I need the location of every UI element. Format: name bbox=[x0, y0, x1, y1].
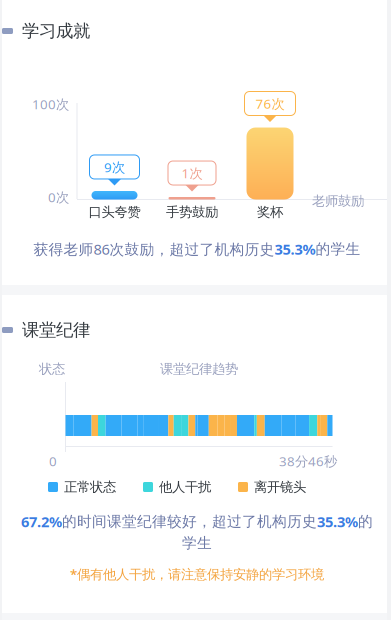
staticText: 奖杯 bbox=[257, 204, 283, 220]
staticText: 他人干扰 bbox=[159, 479, 211, 495]
staticText: 的时间课堂纪律较好，超过了机构历史 bbox=[62, 512, 317, 530]
staticText: 9次 bbox=[104, 158, 125, 176]
staticText: 67.2% bbox=[21, 512, 62, 531]
staticText: 手势鼓励 bbox=[166, 204, 218, 220]
staticText: 的 bbox=[358, 512, 373, 530]
staticText: 正常状态 bbox=[64, 479, 116, 495]
staticText: 状态 bbox=[39, 361, 65, 377]
staticText: 1次 bbox=[181, 164, 202, 182]
staticText: 76次 bbox=[255, 95, 284, 112]
staticText: 100次 bbox=[32, 95, 69, 113]
staticText: 老师鼓励 bbox=[312, 193, 364, 209]
staticText: 课堂纪律 bbox=[22, 319, 90, 341]
staticText: 离开镜头 bbox=[254, 479, 306, 495]
staticText: 的学生 bbox=[315, 240, 360, 258]
staticText: 0次 bbox=[48, 188, 69, 206]
staticText: 38分46秒 bbox=[279, 452, 337, 470]
staticText: 学生 bbox=[182, 534, 212, 552]
staticText: 学习成就 bbox=[22, 20, 90, 42]
staticText: 35.3% bbox=[274, 239, 315, 259]
staticText: 课堂纪律趋势 bbox=[160, 361, 238, 377]
staticText: 口头夸赞 bbox=[88, 204, 140, 220]
staticText: *偶有他人干扰，请注意保持安静的学习环境 bbox=[70, 565, 324, 583]
staticText: 获得老师86次鼓励，超过了机构历史 bbox=[33, 239, 274, 259]
staticText: 0 bbox=[49, 452, 57, 470]
staticText: 35.3% bbox=[317, 512, 358, 531]
